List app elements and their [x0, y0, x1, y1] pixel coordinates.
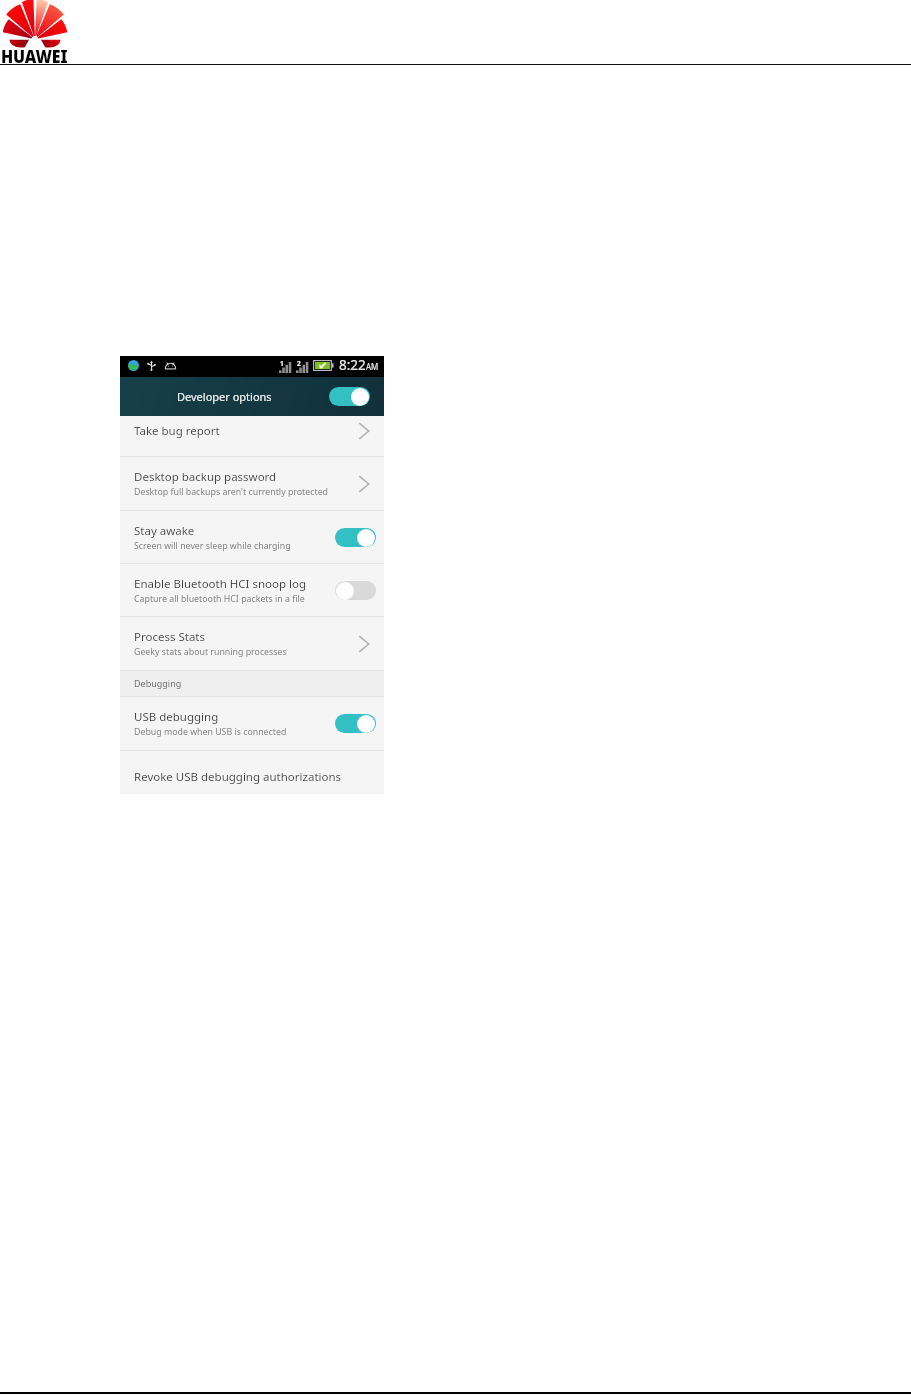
staticText: Debug mode when USB is connected	[134, 726, 287, 738]
staticText: Stay awake	[134, 523, 195, 539]
button[interactable]: Revoke USB debugging authorizations	[120, 751, 384, 794]
button[interactable]: Toggle USB debugging	[335, 714, 376, 733]
other: Open Process Stats	[354, 632, 375, 656]
staticText: 8:22	[339, 356, 366, 374]
button[interactable]: Stay awake	[120, 511, 384, 563]
staticText: Process Stats	[134, 629, 206, 645]
other: Open Desktop backup password	[354, 472, 375, 496]
button[interactable]: Enable Bluetooth HCI snoop log	[120, 564, 384, 616]
button[interactable]: Process Stats	[120, 617, 384, 670]
staticText: 2	[297, 359, 301, 368]
staticText: Enable Bluetooth HCI snoop log	[134, 576, 307, 592]
staticText: Desktop full backups aren't currently pr…	[134, 486, 328, 498]
button[interactable]: USB debugging	[120, 697, 384, 750]
staticText: USB debugging	[134, 709, 219, 725]
other: Open Take bug report	[354, 419, 375, 443]
button[interactable]: Toggle developer options	[329, 387, 370, 406]
button[interactable]: Desktop backup password	[120, 457, 384, 510]
button[interactable]: Take bug report	[120, 416, 384, 456]
staticText: Take bug report	[134, 423, 220, 439]
button[interactable]: Toggle Stay awake	[335, 528, 376, 547]
staticText: Debugging	[134, 677, 182, 689]
staticText: AM	[366, 361, 379, 372]
staticText: Screen will never sleep while charging	[134, 540, 291, 552]
staticText: Geeky stats about running processes	[134, 646, 287, 658]
staticText: Developer options	[177, 389, 272, 404]
staticText: Capture all bluetooth HCI packets in a f…	[134, 593, 305, 605]
button[interactable]: Toggle Enable Bluetooth HCI snoop log	[335, 581, 376, 600]
staticText: 1	[280, 359, 284, 368]
staticText: HUAWEI	[1, 44, 67, 69]
staticText: Desktop backup password	[134, 469, 277, 485]
staticText: Revoke USB debugging authorizations	[134, 769, 342, 785]
